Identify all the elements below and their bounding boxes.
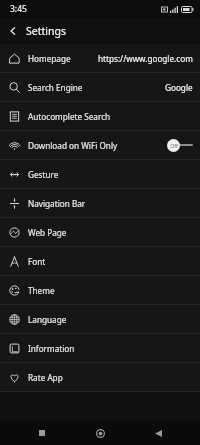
staticText: Download on WiFi Only [28, 140, 118, 151]
button[interactable]: Back [150, 425, 166, 441]
staticText: Gesture [28, 169, 59, 180]
staticText: Rate App [28, 372, 63, 383]
button[interactable]: Download on WiFi Only toggle, Off [167, 138, 193, 152]
staticText: Homepage [28, 53, 71, 64]
staticText: Google [165, 82, 193, 93]
staticText: Web Page [28, 227, 67, 238]
button[interactable]: Navigation Bar [0, 189, 200, 217]
staticText: Language [28, 314, 67, 325]
staticText: Off [170, 142, 178, 149]
button[interactable]: Back [0, 18, 26, 44]
staticText: Font [28, 256, 46, 267]
button[interactable]: Rate App [0, 363, 200, 391]
button[interactable]: Font [0, 247, 200, 275]
button[interactable]: Gesture [0, 160, 200, 188]
button[interactable]: Recents [34, 425, 50, 441]
staticText: 3:45 [10, 3, 27, 15]
staticText: https://www.google.com [98, 53, 193, 64]
staticText: Navigation Bar [28, 198, 86, 209]
staticText: Theme [28, 285, 55, 296]
staticText: Autocomplete Search [28, 111, 111, 122]
button[interactable]: Download on WiFi Only [0, 131, 200, 159]
button[interactable]: Autocomplete Search [0, 102, 200, 130]
staticText: Settings [26, 24, 66, 38]
button[interactable]: Home [92, 425, 108, 441]
button[interactable]: Information [0, 334, 200, 362]
button[interactable]: Theme [0, 276, 200, 304]
button[interactable]: Search Engine [0, 73, 200, 101]
staticText: Information [28, 343, 75, 354]
button[interactable]: Homepage [0, 44, 200, 72]
button[interactable]: Language [0, 305, 200, 333]
button[interactable]: Web Page [0, 218, 200, 246]
staticText: Search Engine [28, 82, 83, 93]
